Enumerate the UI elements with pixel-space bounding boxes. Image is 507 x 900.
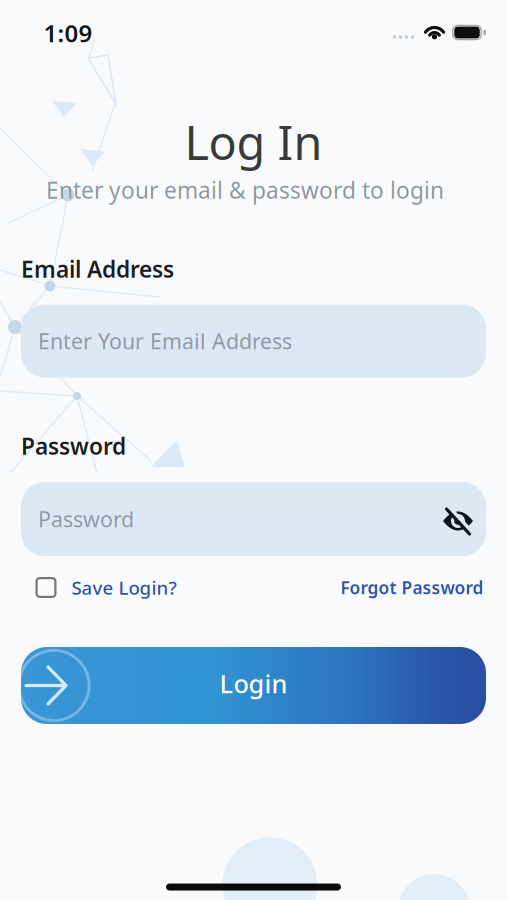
button[interactable]: Enter Your Email Address (21, 304, 486, 377)
button[interactable]: Forgot Password (340, 576, 483, 599)
button[interactable]: Password (21, 482, 486, 556)
button[interactable]: Save Login? (35, 575, 176, 600)
staticText: Log In (184, 111, 322, 173)
staticText: Enter Your Email Address (38, 327, 292, 355)
staticText: Password (21, 431, 126, 461)
staticText: 1:09 (43, 17, 92, 49)
staticText: Login (219, 667, 287, 700)
staticText: Enter your email & password to login (46, 175, 444, 205)
button[interactable]: Show password (442, 506, 474, 536)
staticText: Save Login? (71, 575, 176, 600)
staticText: Password (38, 505, 134, 533)
staticText: Forgot Password (340, 576, 483, 599)
button[interactable]: Login (21, 647, 486, 724)
staticText: Email Address (21, 254, 174, 284)
